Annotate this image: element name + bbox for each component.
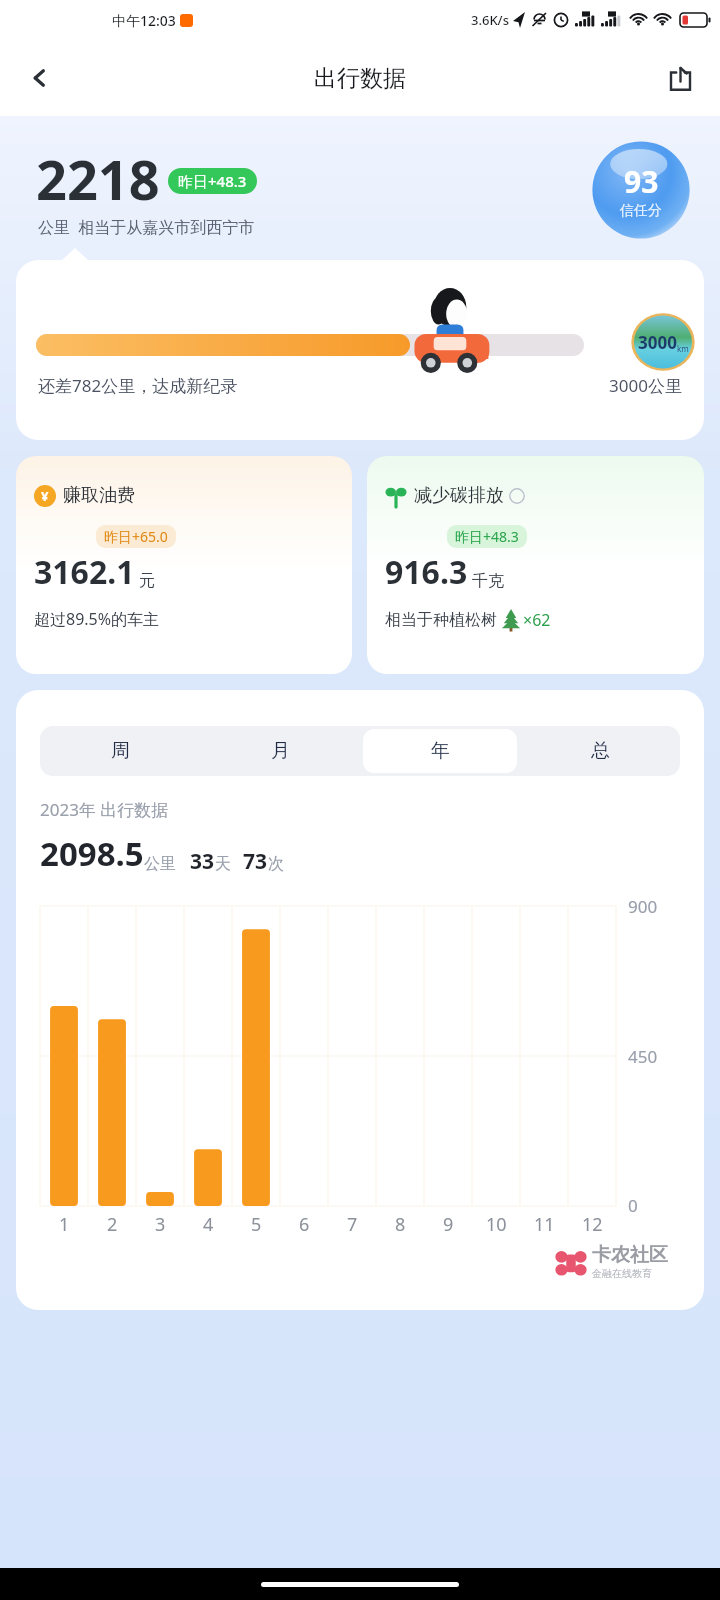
staticText: 2 <box>107 1212 118 1237</box>
staticText: 相当于种植松树 <box>385 610 497 630</box>
staticText: 8 <box>395 1212 406 1237</box>
staticText: 3000公里 <box>609 374 682 397</box>
staticText: 33 <box>190 847 215 876</box>
staticText: 昨日+48.3 <box>178 171 247 191</box>
staticText: 10 <box>486 1212 507 1237</box>
button[interactable]: Share <box>654 52 706 104</box>
staticText: ¥ <box>41 487 49 505</box>
staticText: 2218 <box>36 142 160 216</box>
staticText: 减少碳排放 <box>414 484 504 507</box>
button[interactable]: 月 <box>203 729 357 773</box>
button[interactable]: Back <box>14 52 66 104</box>
staticText: 93 <box>624 161 659 202</box>
staticText: ×62 <box>523 609 551 631</box>
staticText: 次 <box>268 854 284 874</box>
staticText: 2098.5 <box>40 831 144 876</box>
staticText: 千克 <box>472 571 504 591</box>
staticText: 昨日+65.0 <box>104 527 168 546</box>
staticText: 9 <box>443 1212 454 1237</box>
button[interactable]: 3000 <box>16 260 704 440</box>
staticText: 2023年 出行数据 <box>40 798 169 821</box>
staticText: 总 <box>591 739 610 763</box>
button[interactable]: 年 <box>363 729 517 773</box>
staticText: 还差782公里，达成新纪录 <box>38 374 238 397</box>
staticText: 元 <box>139 571 155 591</box>
staticText: 4 <box>203 1212 214 1237</box>
button[interactable]: ¥ <box>16 456 352 674</box>
button[interactable]: 总 <box>523 729 677 773</box>
staticText: 中午12:03 <box>112 11 176 30</box>
staticText: 1 <box>59 1212 70 1237</box>
staticText: 信任分 <box>620 202 662 220</box>
staticText: 900 <box>628 895 658 918</box>
staticText: 昨日+48.3 <box>455 527 519 546</box>
staticText: 6 <box>299 1212 310 1237</box>
staticText: 916.3 <box>385 550 468 594</box>
staticText: 3000 <box>638 331 677 354</box>
staticText: 公里 相当于从嘉兴市到西宁市 <box>38 216 255 238</box>
staticText: 3.6K/s <box>471 11 509 29</box>
staticText: 73 <box>243 847 268 876</box>
staticText: 超过89.5%的车主 <box>34 608 160 630</box>
button[interactable]: 93 <box>586 136 696 244</box>
staticText: 0 <box>628 1194 638 1217</box>
staticText: 天 <box>215 854 231 874</box>
staticText: 年 <box>431 739 450 763</box>
staticText: 出行数据 <box>314 64 406 93</box>
button[interactable]: 周 <box>43 729 197 773</box>
staticText: 3 <box>155 1212 166 1237</box>
staticText: km <box>677 343 689 354</box>
staticText: 赚取油费 <box>63 484 135 507</box>
staticText: 卡农社区 <box>592 1243 668 1267</box>
staticText: 12 <box>582 1212 603 1237</box>
staticText: 金融在线教育 <box>592 1267 652 1280</box>
staticText: 公里 <box>144 854 176 874</box>
staticText: 11 <box>534 1212 555 1237</box>
staticText: 3162.1 <box>34 550 135 594</box>
staticText: 周 <box>111 739 130 763</box>
staticText: 月 <box>271 739 290 763</box>
staticText: 7 <box>347 1212 358 1237</box>
staticText: 5 <box>251 1212 262 1237</box>
button[interactable]: 减少碳排放 <box>367 456 704 674</box>
staticText: 450 <box>628 1045 658 1068</box>
